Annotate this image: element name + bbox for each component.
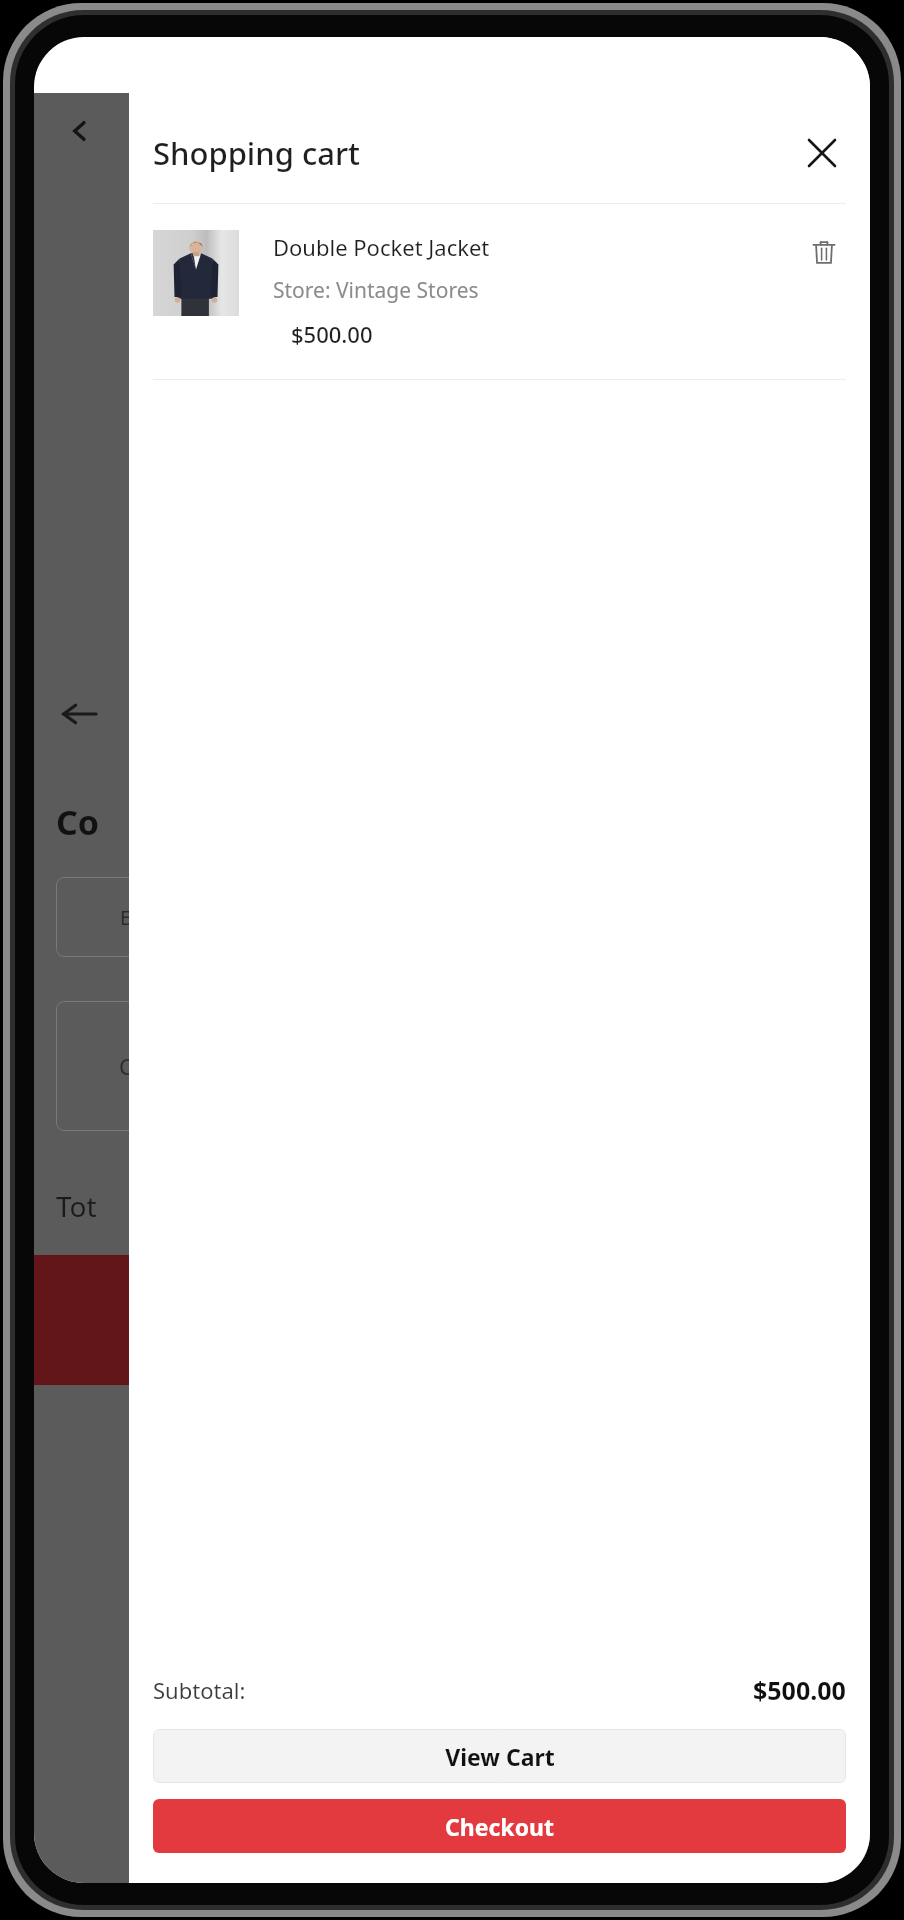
staticText: Subtotal: — [153, 1675, 246, 1705]
staticText: $500.00 — [753, 1673, 846, 1707]
staticText: Checkout — [445, 1811, 554, 1842]
button[interactable]: Double Pocket Jacket — [153, 230, 846, 349]
button[interactable]: Checkout — [153, 1799, 846, 1853]
staticText: Double Pocket Jacket — [273, 232, 490, 262]
button[interactable]: Close — [798, 129, 846, 177]
button[interactable]: Remove item — [802, 230, 846, 274]
staticText: Shopping cart — [153, 132, 798, 174]
staticText: Tot — [56, 1187, 97, 1225]
staticText: View Cart — [445, 1741, 555, 1772]
staticText: Co — [56, 799, 100, 845]
staticText: $500.00 — [291, 319, 373, 349]
staticText: Store: Vintage Stores — [273, 276, 479, 305]
button[interactable]: View Cart — [153, 1729, 846, 1783]
staticText: C — [119, 1051, 133, 1081]
staticText: E — [120, 904, 132, 931]
